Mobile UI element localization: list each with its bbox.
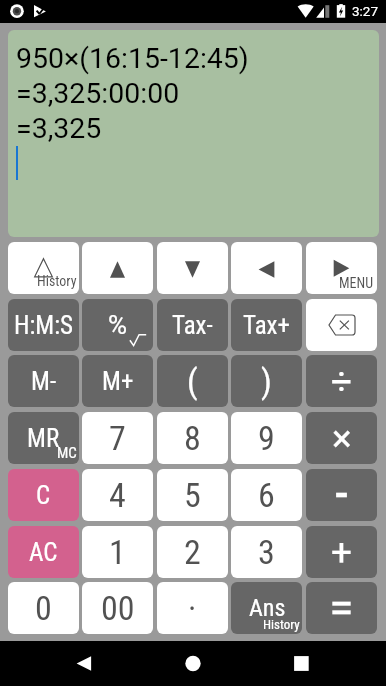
staticText: M-	[31, 367, 57, 396]
staticText: History	[37, 273, 77, 289]
button[interactable]: 1	[82, 526, 153, 578]
staticText: C	[36, 481, 51, 510]
staticText: 950×(16:15-12:45)	[16, 42, 249, 75]
button[interactable]: AC	[8, 526, 79, 578]
button[interactable]: 3	[231, 526, 302, 578]
staticText: =3,325	[16, 112, 102, 145]
button[interactable]: 4	[82, 469, 153, 521]
staticText: MENU	[339, 275, 374, 291]
staticText: +	[331, 531, 352, 574]
button[interactable]	[306, 582, 377, 634]
button[interactable]: )	[231, 355, 302, 407]
button[interactable]: Move cursor left	[231, 242, 302, 294]
staticText: MR	[27, 424, 60, 453]
staticText: Tax+	[243, 311, 291, 340]
button[interactable]: C	[8, 469, 79, 521]
button[interactable]: 00	[82, 582, 153, 634]
button[interactable]: H:M:S	[8, 299, 79, 351]
staticText: 4	[109, 475, 126, 515]
button[interactable]	[306, 469, 377, 521]
staticText: ×	[332, 417, 352, 460]
staticText: 00	[101, 588, 135, 628]
staticText: (	[187, 361, 198, 401]
button[interactable]: 5	[157, 469, 228, 521]
button[interactable]: Menu	[306, 242, 377, 294]
button[interactable]: Backspace	[306, 299, 377, 351]
staticText: =3,325:00:00	[16, 77, 180, 110]
button[interactable]: Tax-	[157, 299, 228, 351]
staticText: AC	[29, 538, 58, 567]
staticText: 3	[258, 532, 275, 572]
button[interactable]: 6	[231, 469, 302, 521]
staticText: MC	[57, 444, 77, 462]
button[interactable]: Ans	[231, 582, 302, 634]
staticText: Ans	[249, 594, 286, 622]
button[interactable]: (	[157, 355, 228, 407]
button[interactable]: History	[8, 242, 79, 294]
staticText: 3:27	[352, 3, 379, 19]
staticText: M+	[102, 367, 134, 396]
button[interactable]: 0	[8, 582, 79, 634]
button[interactable]: Scroll down	[157, 242, 228, 294]
button[interactable]: 8	[157, 412, 228, 464]
staticText: 6	[258, 475, 275, 515]
staticText: H:M:S	[14, 311, 74, 340]
button[interactable]: ÷	[306, 355, 377, 407]
staticText: 2	[184, 532, 201, 572]
staticText: 0	[35, 588, 52, 628]
button[interactable]: %	[82, 299, 153, 351]
staticText: ·	[188, 588, 197, 628]
staticText: )	[261, 361, 272, 401]
button[interactable]: ×	[306, 412, 377, 464]
button[interactable]: ·	[157, 582, 228, 634]
button[interactable]: 7	[82, 412, 153, 464]
button[interactable]: 9	[231, 412, 302, 464]
button[interactable]: 2	[157, 526, 228, 578]
staticText: 9	[258, 418, 275, 458]
button[interactable]: Scroll up	[82, 242, 153, 294]
button[interactable]: M-	[8, 355, 79, 407]
staticText: Tax-	[172, 311, 213, 340]
button[interactable]: M+	[82, 355, 153, 407]
staticText: 7	[109, 418, 126, 458]
staticText: 1	[109, 532, 126, 572]
button[interactable]: +	[306, 526, 377, 578]
staticText: 8	[184, 418, 201, 458]
staticText: %	[108, 310, 128, 340]
button[interactable]: MR	[8, 412, 79, 464]
staticText: ÷	[331, 360, 353, 403]
button[interactable]: Tax+	[231, 299, 302, 351]
staticText: History	[263, 617, 300, 632]
staticText: 5	[184, 475, 201, 515]
